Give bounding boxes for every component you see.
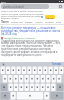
button[interactable]: Tabs [59, 5, 62, 8]
button[interactable]: д [46, 74, 52, 82]
button[interactable]: г [34, 66, 39, 74]
staticText: yandex.ru/search [3, 5, 25, 9]
button[interactable]: щ [44, 66, 49, 74]
button[interactable]: Маркет [45, 20, 54, 23]
button[interactable]: у [12, 66, 18, 74]
button[interactable]: Всё про ремонт квартиры — пошаговое руко… [1, 26, 61, 57]
staticText: Подробная инструкция по ремонту квартиры… [1, 39, 61, 57]
staticText: Видео [25, 20, 33, 23]
button[interactable]: Найти [45, 15, 55, 19]
button[interactable]: т [36, 82, 41, 91]
button[interactable]: Enter [50, 91, 64, 100]
button[interactable]: р [28, 74, 34, 82]
button[interactable]: ы [5, 74, 10, 82]
button[interactable]: Поиск [1, 20, 9, 23]
button[interactable]: Address bar [1, 4, 49, 9]
button[interactable]: б [46, 82, 51, 91]
button[interactable]: Space [17, 91, 44, 100]
button[interactable]: в [10, 74, 16, 82]
button[interactable]: п [22, 74, 28, 82]
button[interactable]: Готово [52, 62, 62, 66]
staticText: 9:41 [1, 0, 6, 3]
button[interactable]: ю [51, 82, 56, 91]
button[interactable]: Comma [11, 91, 17, 100]
button[interactable]: ц [6, 66, 12, 74]
staticText: Готово [52, 62, 62, 66]
button[interactable]: Backspace [56, 82, 64, 91]
button[interactable]: л [40, 74, 46, 82]
button[interactable]: м [26, 82, 31, 91]
staticText: Поиск [1, 20, 9, 23]
staticText: remont-doma.ru › kvartira [4, 36, 35, 39]
button[interactable]: к [18, 66, 24, 74]
button[interactable]: Period [44, 91, 50, 100]
button[interactable]: Symbols [0, 91, 11, 100]
button[interactable]: Shift [0, 82, 9, 91]
button[interactable]: н [29, 66, 34, 74]
staticText: Маркет [45, 20, 54, 23]
staticText: Ремонт квартир и домов своими руками: со… [1, 10, 45, 19]
button[interactable]: х [54, 66, 59, 74]
button[interactable]: Картинки [11, 20, 23, 23]
staticText: Карты [35, 20, 43, 23]
button[interactable]: э [58, 74, 64, 82]
staticText: Всё про ремонт квартиры — пошаговое руко… [1, 26, 61, 36]
button[interactable]: Ещё [56, 20, 62, 23]
button[interactable]: ф [0, 74, 5, 82]
button[interactable]: о [34, 74, 40, 82]
staticText: Найти [46, 16, 54, 19]
button[interactable]: й [0, 66, 6, 74]
staticText: Ещё [56, 20, 62, 23]
button[interactable]: Карты [35, 20, 43, 23]
button[interactable]: ж [52, 74, 58, 82]
button[interactable]: ч [15, 82, 21, 91]
button[interactable]: е [24, 66, 29, 74]
button[interactable]: а [16, 74, 22, 82]
button[interactable]: Видео [25, 20, 33, 23]
button[interactable]: ъ [59, 66, 64, 74]
staticText: Картинки [11, 20, 23, 23]
button[interactable]: ь [41, 82, 46, 91]
button[interactable]: ш [39, 66, 44, 74]
button[interactable]: Voice input [2, 63, 5, 66]
button[interactable]: з [49, 66, 54, 74]
button[interactable]: и [31, 82, 36, 91]
button[interactable]: я [9, 82, 15, 91]
button[interactable]: с [21, 82, 26, 91]
